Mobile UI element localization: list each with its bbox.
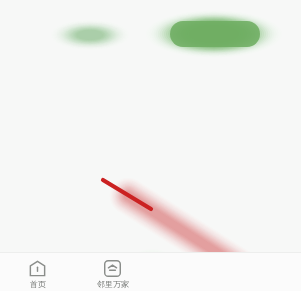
staticText: 邻里万家	[97, 279, 129, 289]
button[interactable]	[170, 21, 260, 47]
staticText: 首页	[30, 279, 46, 289]
button[interactable]: 首页	[0, 256, 75, 289]
button[interactable]: 邻里万家	[75, 256, 150, 289]
